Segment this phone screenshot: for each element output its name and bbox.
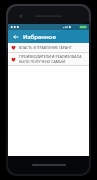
staticText: БЫЛО ПОЛУЧЕНО САМЫЙ xyxy=(19,59,65,64)
button[interactable]: Back xyxy=(11,32,20,41)
staticText: Избранное xyxy=(23,33,56,41)
button[interactable]: ПРОИЗВОДИТЕЛИ И РЕАЛИЗОВАЛА xyxy=(8,53,89,65)
staticText: ВЛАСТЬ В ПРАВЛЕНИЕ ГАРАНТ xyxy=(19,45,72,50)
staticText: ПРОИЗВОДИТЕЛИ И РЕАЛИЗОВАЛА xyxy=(19,54,82,59)
button[interactable]: ВЛАСТЬ В ПРАВЛЕНИЕ ГАРАНТ xyxy=(8,43,89,52)
